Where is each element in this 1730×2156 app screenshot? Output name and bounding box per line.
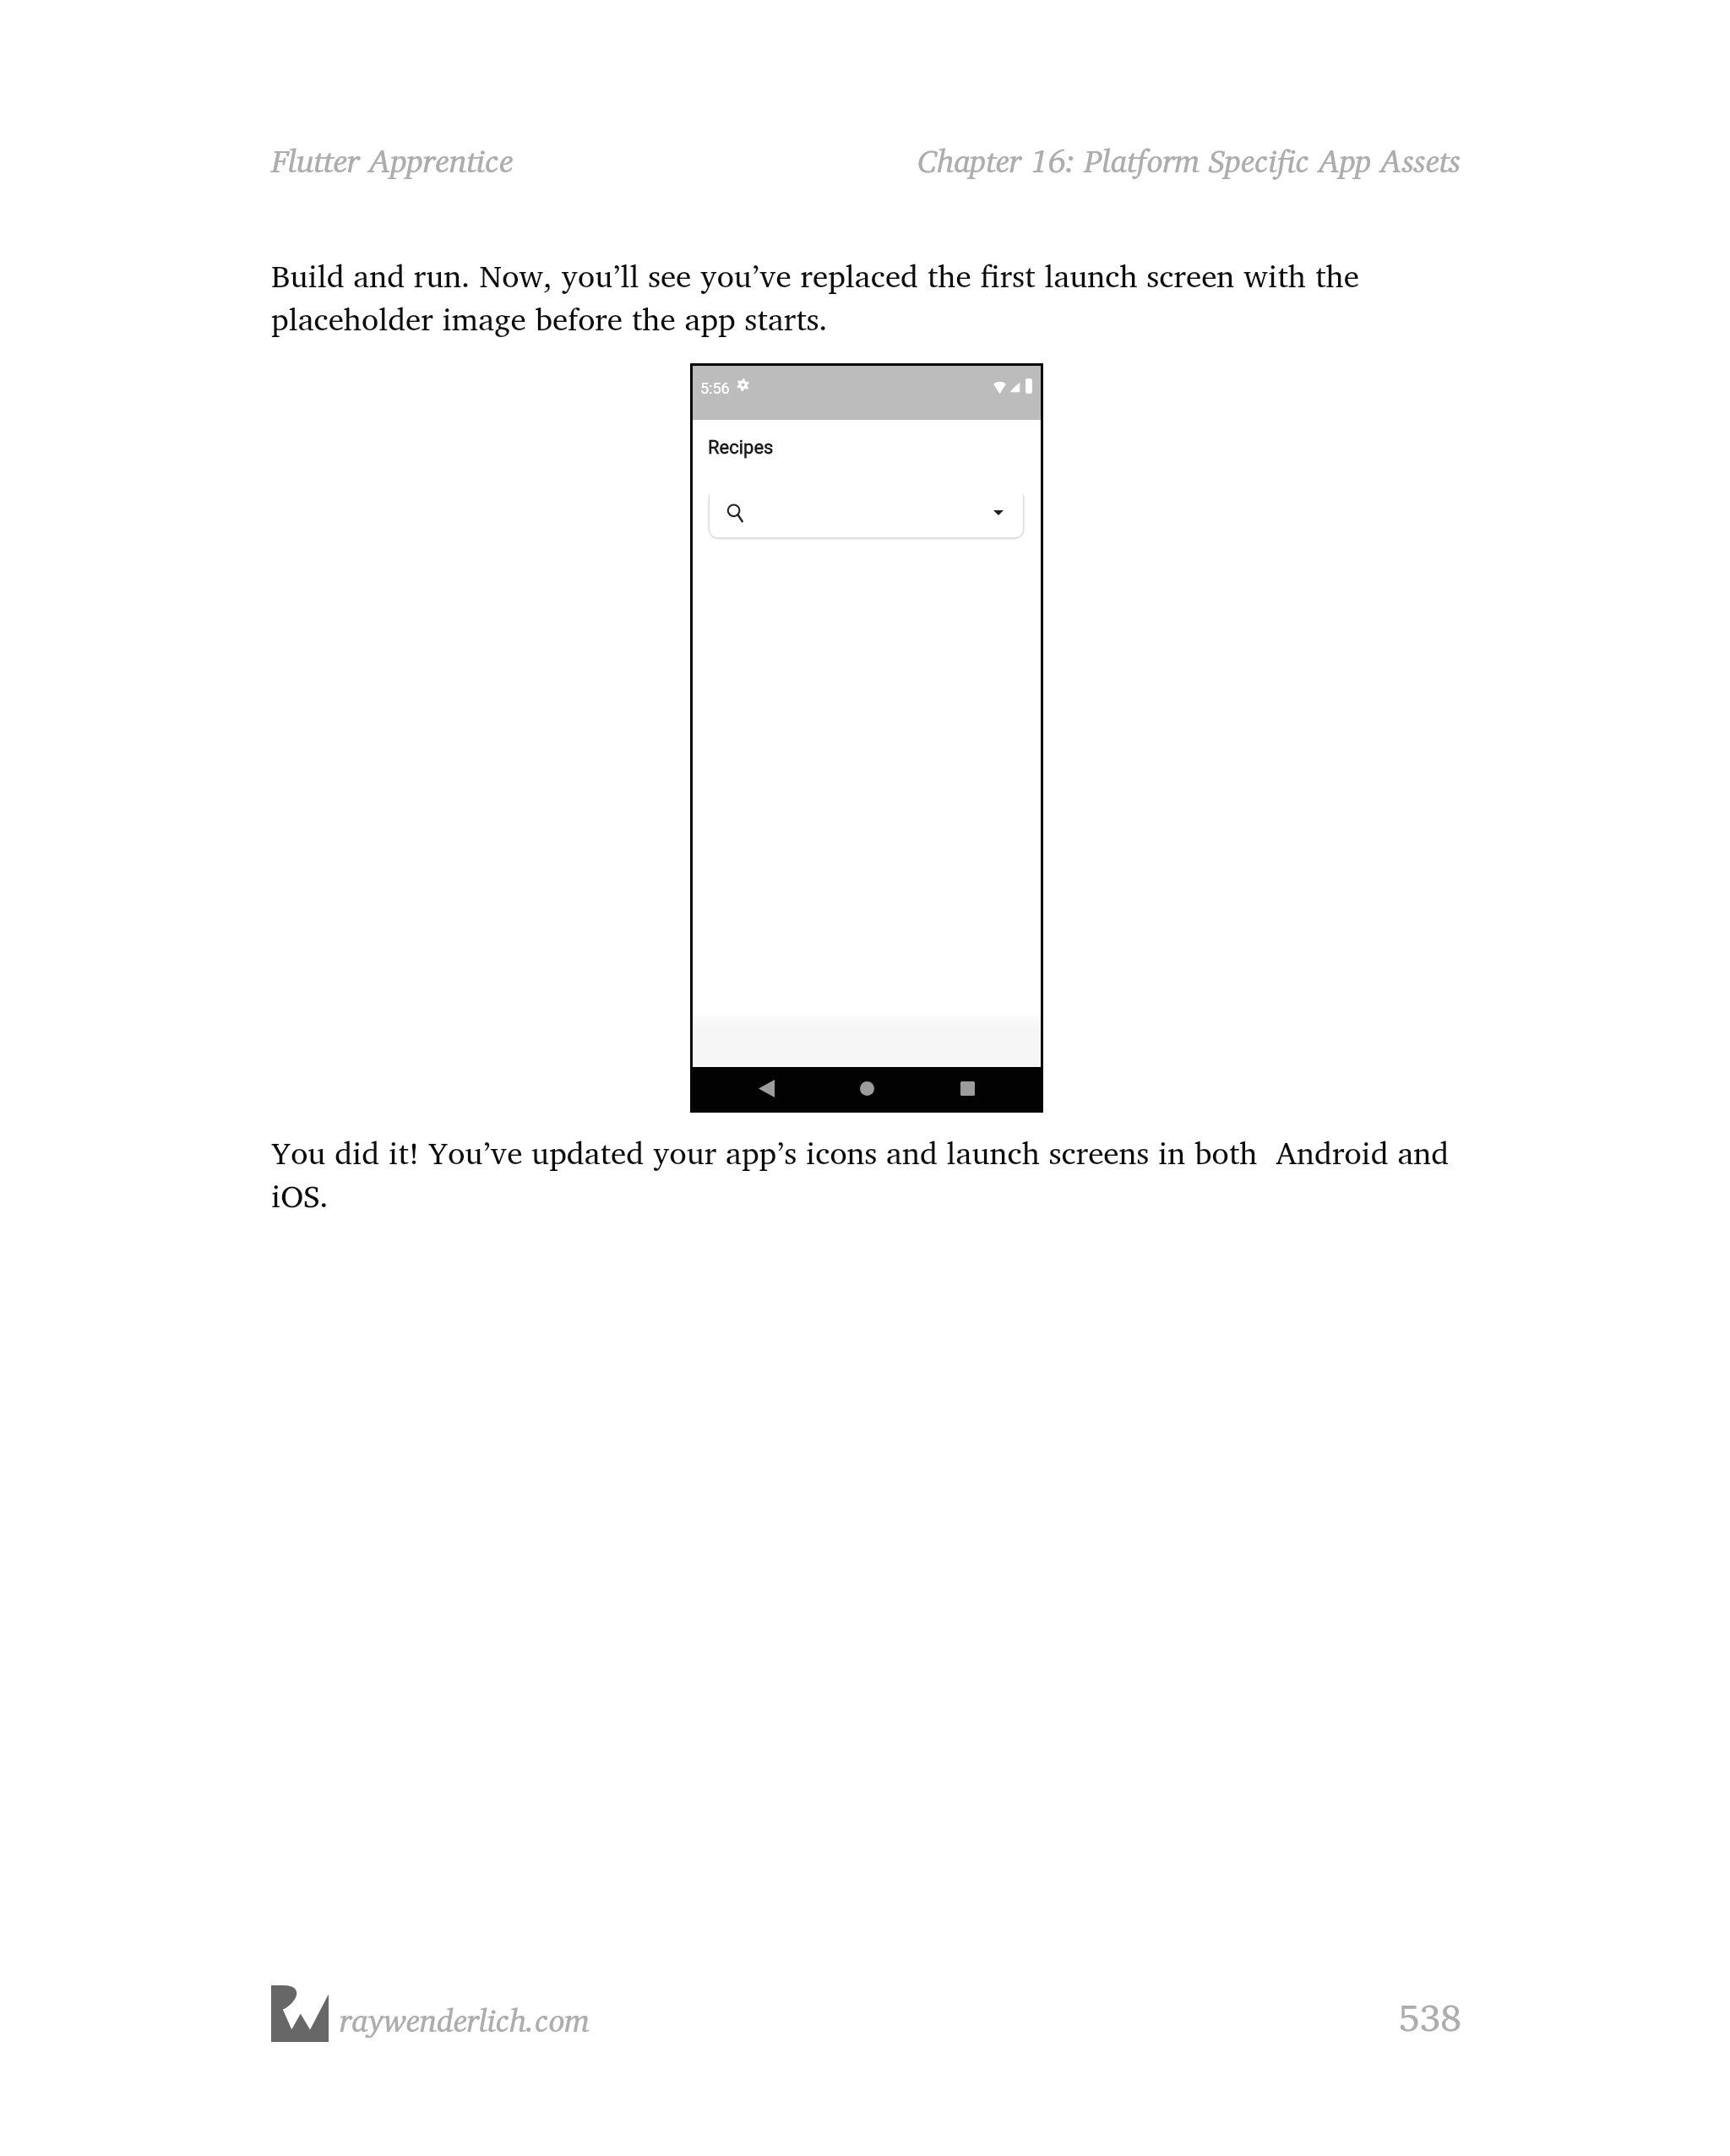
- staticText: Chapter 16: Platform Specific App Assets: [616, 134, 1461, 187]
- button[interactable]: Search recipes: [710, 487, 1023, 537]
- staticText: You did it! You’ve updated your app’s ic…: [271, 1127, 1450, 1221]
- button[interactable]: Back: [749, 1075, 783, 1102]
- staticText: raywenderlich.com: [340, 1994, 590, 2038]
- staticText: 5:56: [700, 379, 730, 397]
- staticText: Recipes: [708, 437, 774, 459]
- button[interactable]: raywenderlich.com: [340, 1994, 593, 2038]
- button[interactable]: Recents: [950, 1075, 984, 1102]
- button[interactable]: Home: [850, 1075, 884, 1102]
- staticText: 538: [1039, 1986, 1461, 2047]
- button[interactable]: raywenderlich.com home: [271, 1985, 329, 2042]
- staticText: Flutter Apprentice: [271, 133, 514, 187]
- staticText: Build and run. Now, you’ll see you’ve re…: [271, 250, 1359, 344]
